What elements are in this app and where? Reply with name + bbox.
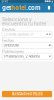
staticText: encuentra tu hotel — [2, 21, 46, 27]
button[interactable]: 01/10/2019 — [2, 42, 52, 48]
button[interactable]: gethotel.com home — [2, 3, 40, 12]
button[interactable]: ¿Dónde quieres ir? — [2, 31, 52, 37]
staticText: Destino — [2, 27, 15, 32]
button[interactable]: 1 Habitación, 2 Adultos — [2, 53, 52, 59]
staticText: Habitaciones — [2, 49, 24, 54]
staticText: Fechas — [2, 38, 14, 43]
staticText: 9:41 — [1, 0, 7, 3]
button[interactable]: BUSCAR HOTELES — [2, 91, 52, 97]
staticText: ¿Dónde quieres ir? — [3, 32, 34, 36]
staticText: get — [2, 4, 11, 11]
staticText: ●●● ▮ — [44, 0, 52, 3]
staticText: hotel — [11, 4, 26, 11]
staticText: 01/10/2019 — [3, 43, 18, 47]
staticText: .com — [26, 4, 40, 11]
staticText: BUSCAR HOTELES — [11, 92, 42, 96]
button[interactable]: Menu — [46, 3, 52, 12]
staticText: Selecciona y — [2, 17, 32, 22]
staticText: 1 Habitación, 2 Adultos — [3, 54, 40, 58]
